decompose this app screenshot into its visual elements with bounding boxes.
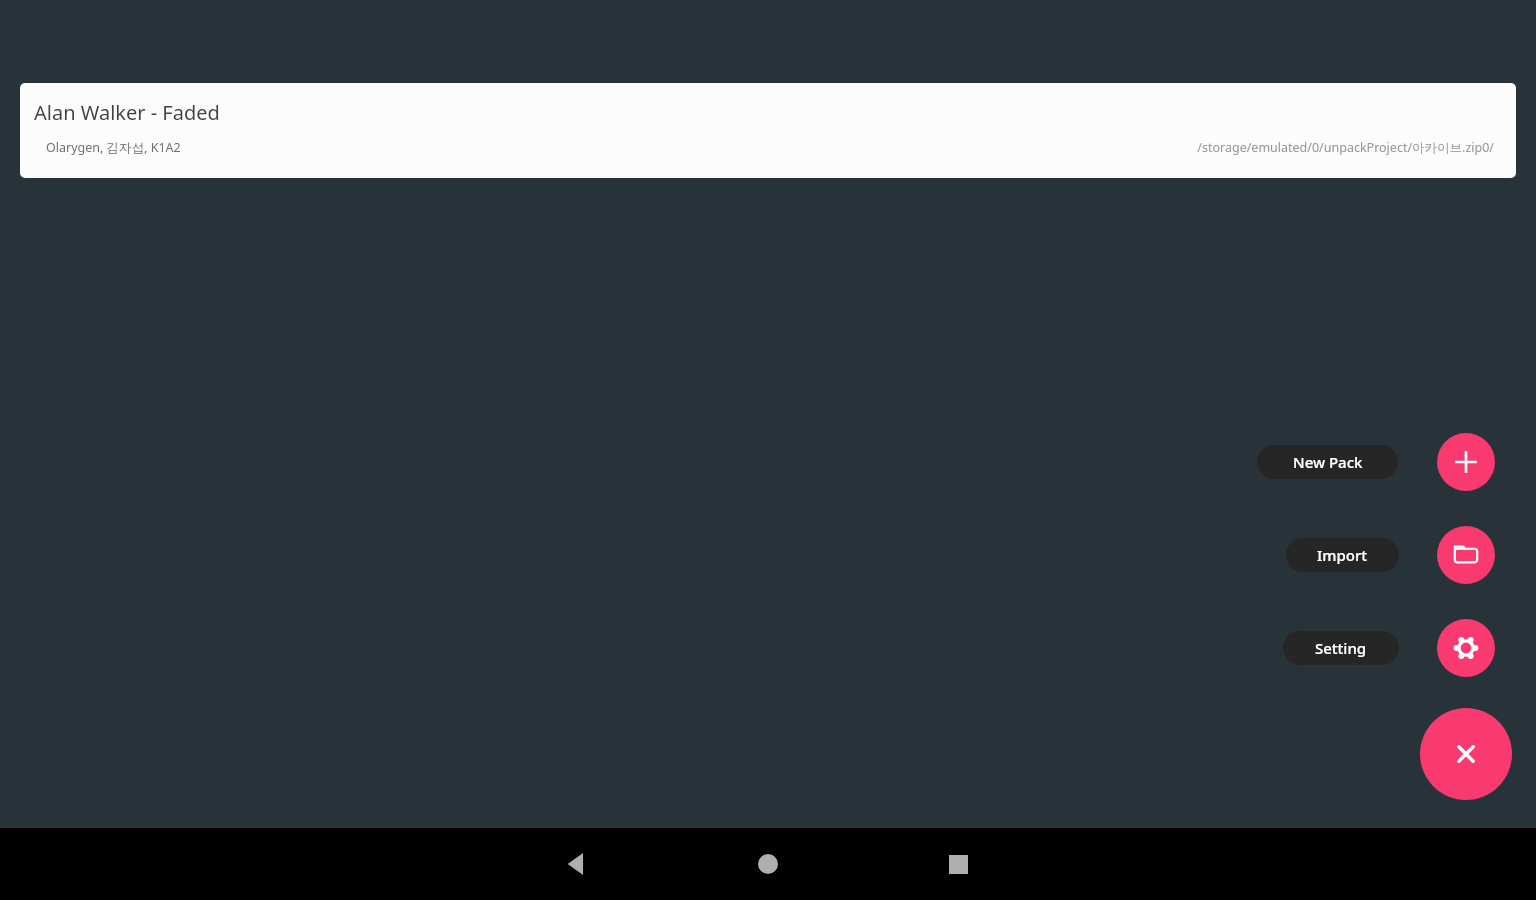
button[interactable]: Setting <box>1283 631 1399 665</box>
button[interactable]: Setting <box>1437 619 1495 677</box>
staticText: Import <box>1317 545 1368 565</box>
button[interactable]: Back <box>550 838 602 890</box>
button[interactable]: New Pack <box>1257 445 1398 479</box>
button[interactable]: Import <box>1437 526 1495 584</box>
button[interactable]: Alan Walker - Faded <box>20 83 1516 178</box>
staticText: Olarygen, 김자섭, K1A2 <box>46 139 181 156</box>
button[interactable]: Import <box>1286 538 1399 572</box>
staticText: Setting <box>1315 638 1367 658</box>
staticText: New Pack <box>1293 452 1363 472</box>
button[interactable]: Close menu <box>1420 708 1512 800</box>
button[interactable]: Home <box>742 838 794 890</box>
staticText: Alan Walker - Faded <box>34 99 220 126</box>
staticText: /storage/emulated/0/unpackProject/아카이브.z… <box>20 139 1494 156</box>
button[interactable]: Recent apps <box>932 838 984 890</box>
button[interactable]: New Pack <box>1437 433 1495 491</box>
